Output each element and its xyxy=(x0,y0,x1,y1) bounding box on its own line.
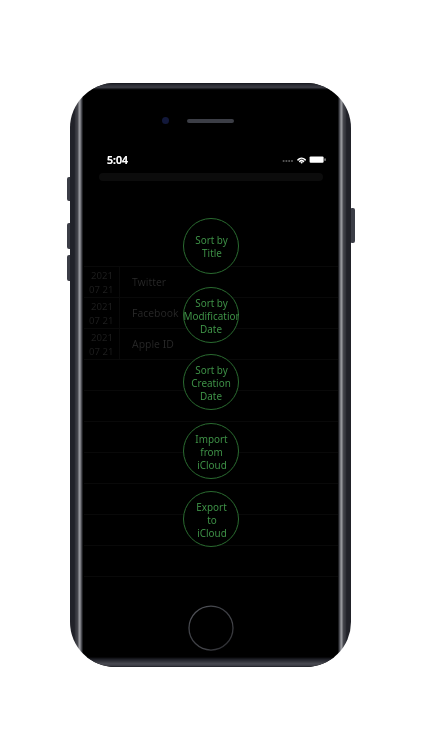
staticText: Date xyxy=(200,389,222,402)
button[interactable]: Import xyxy=(183,423,239,479)
staticText: 2021 xyxy=(91,331,113,344)
button[interactable]: 2021 xyxy=(84,329,338,359)
button[interactable]: Sort by xyxy=(183,354,239,410)
other: Home xyxy=(186,603,236,653)
staticText: Export xyxy=(196,500,227,513)
staticText: Twitter xyxy=(132,275,167,289)
staticText: iCloud xyxy=(197,458,227,471)
staticText: 07 21 xyxy=(89,283,114,296)
staticText: Title xyxy=(202,246,222,259)
staticText: 07 21 xyxy=(89,345,114,358)
staticText: from xyxy=(200,445,223,458)
staticText: Facebook xyxy=(132,306,179,320)
staticText: Modification xyxy=(183,309,239,322)
staticText: Sort by xyxy=(195,296,228,309)
staticText: 2021 xyxy=(91,300,113,313)
staticText: to xyxy=(207,513,217,526)
staticText: Sort by xyxy=(195,363,228,376)
staticText: Apple ID xyxy=(132,337,174,351)
staticText: iCloud xyxy=(197,526,227,539)
staticText: 2021 xyxy=(91,269,113,282)
staticText: Creation xyxy=(191,376,231,389)
button[interactable]: Sort by xyxy=(183,287,239,343)
staticText: 07 21 xyxy=(89,314,114,327)
staticText: Sort by xyxy=(195,233,228,246)
button[interactable]: 2021 xyxy=(84,267,338,297)
staticText: Import xyxy=(195,432,228,445)
button[interactable]: 2021 xyxy=(84,298,338,328)
staticText: Date xyxy=(200,322,222,335)
staticText: 5:04 xyxy=(107,153,128,167)
button[interactable]: Export xyxy=(183,491,239,547)
button[interactable]: Sort by xyxy=(183,218,239,274)
